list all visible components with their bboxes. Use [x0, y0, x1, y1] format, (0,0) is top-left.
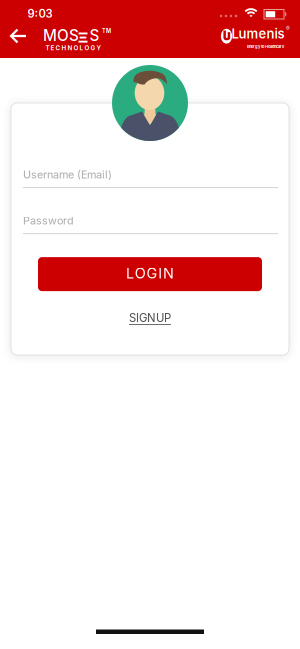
- staticText: O: [135, 265, 146, 282]
- button[interactable]: L: [38, 257, 262, 291]
- staticText: Username (Email): [23, 168, 112, 181]
- staticText: N: [163, 265, 174, 282]
- button[interactable]: SIGNUP: [129, 311, 171, 325]
- staticText: T E C H N O L O G Y: [45, 44, 101, 52]
- staticText: TM: [102, 28, 111, 34]
- staticText: ®: [286, 25, 290, 32]
- staticText: Energy to Healthcare: [247, 44, 284, 49]
- button[interactable]: Back: [5, 23, 31, 49]
- staticText: 9:03: [27, 7, 52, 21]
- staticText: L: [126, 265, 134, 282]
- staticText: I: [158, 265, 162, 282]
- button[interactable]: Password: [23, 214, 278, 234]
- staticText: Password: [23, 214, 74, 227]
- staticText: MOS: [43, 26, 79, 45]
- staticText: G: [146, 265, 157, 282]
- button[interactable]: Username (Email): [23, 168, 278, 188]
- staticText: SIGNUP: [129, 311, 171, 325]
- staticText: S: [89, 26, 99, 45]
- staticText: Lumenis: [231, 26, 284, 41]
